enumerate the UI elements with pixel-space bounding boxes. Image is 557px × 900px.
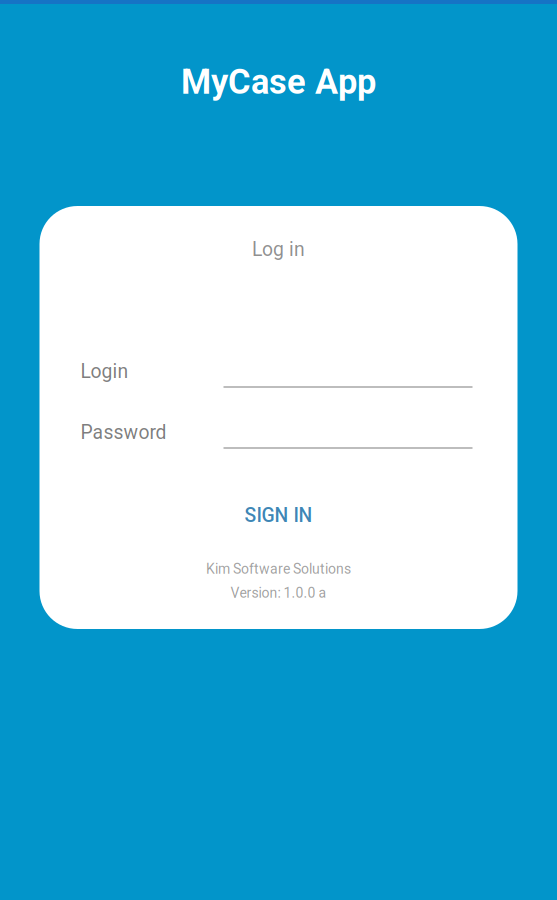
staticText: Login [80,360,128,383]
button[interactable]: SIGN IN [198,504,358,527]
staticText: Kim Software Solutions [206,561,351,577]
button[interactable]: Login [78,360,478,390]
staticText: Version: 1.0.0 a [230,585,326,601]
staticText: SIGN IN [244,504,312,527]
staticText: MyCase App [181,62,376,102]
staticText: Log in [252,238,305,261]
button[interactable]: Password [78,421,478,451]
staticText: Password [80,421,166,444]
